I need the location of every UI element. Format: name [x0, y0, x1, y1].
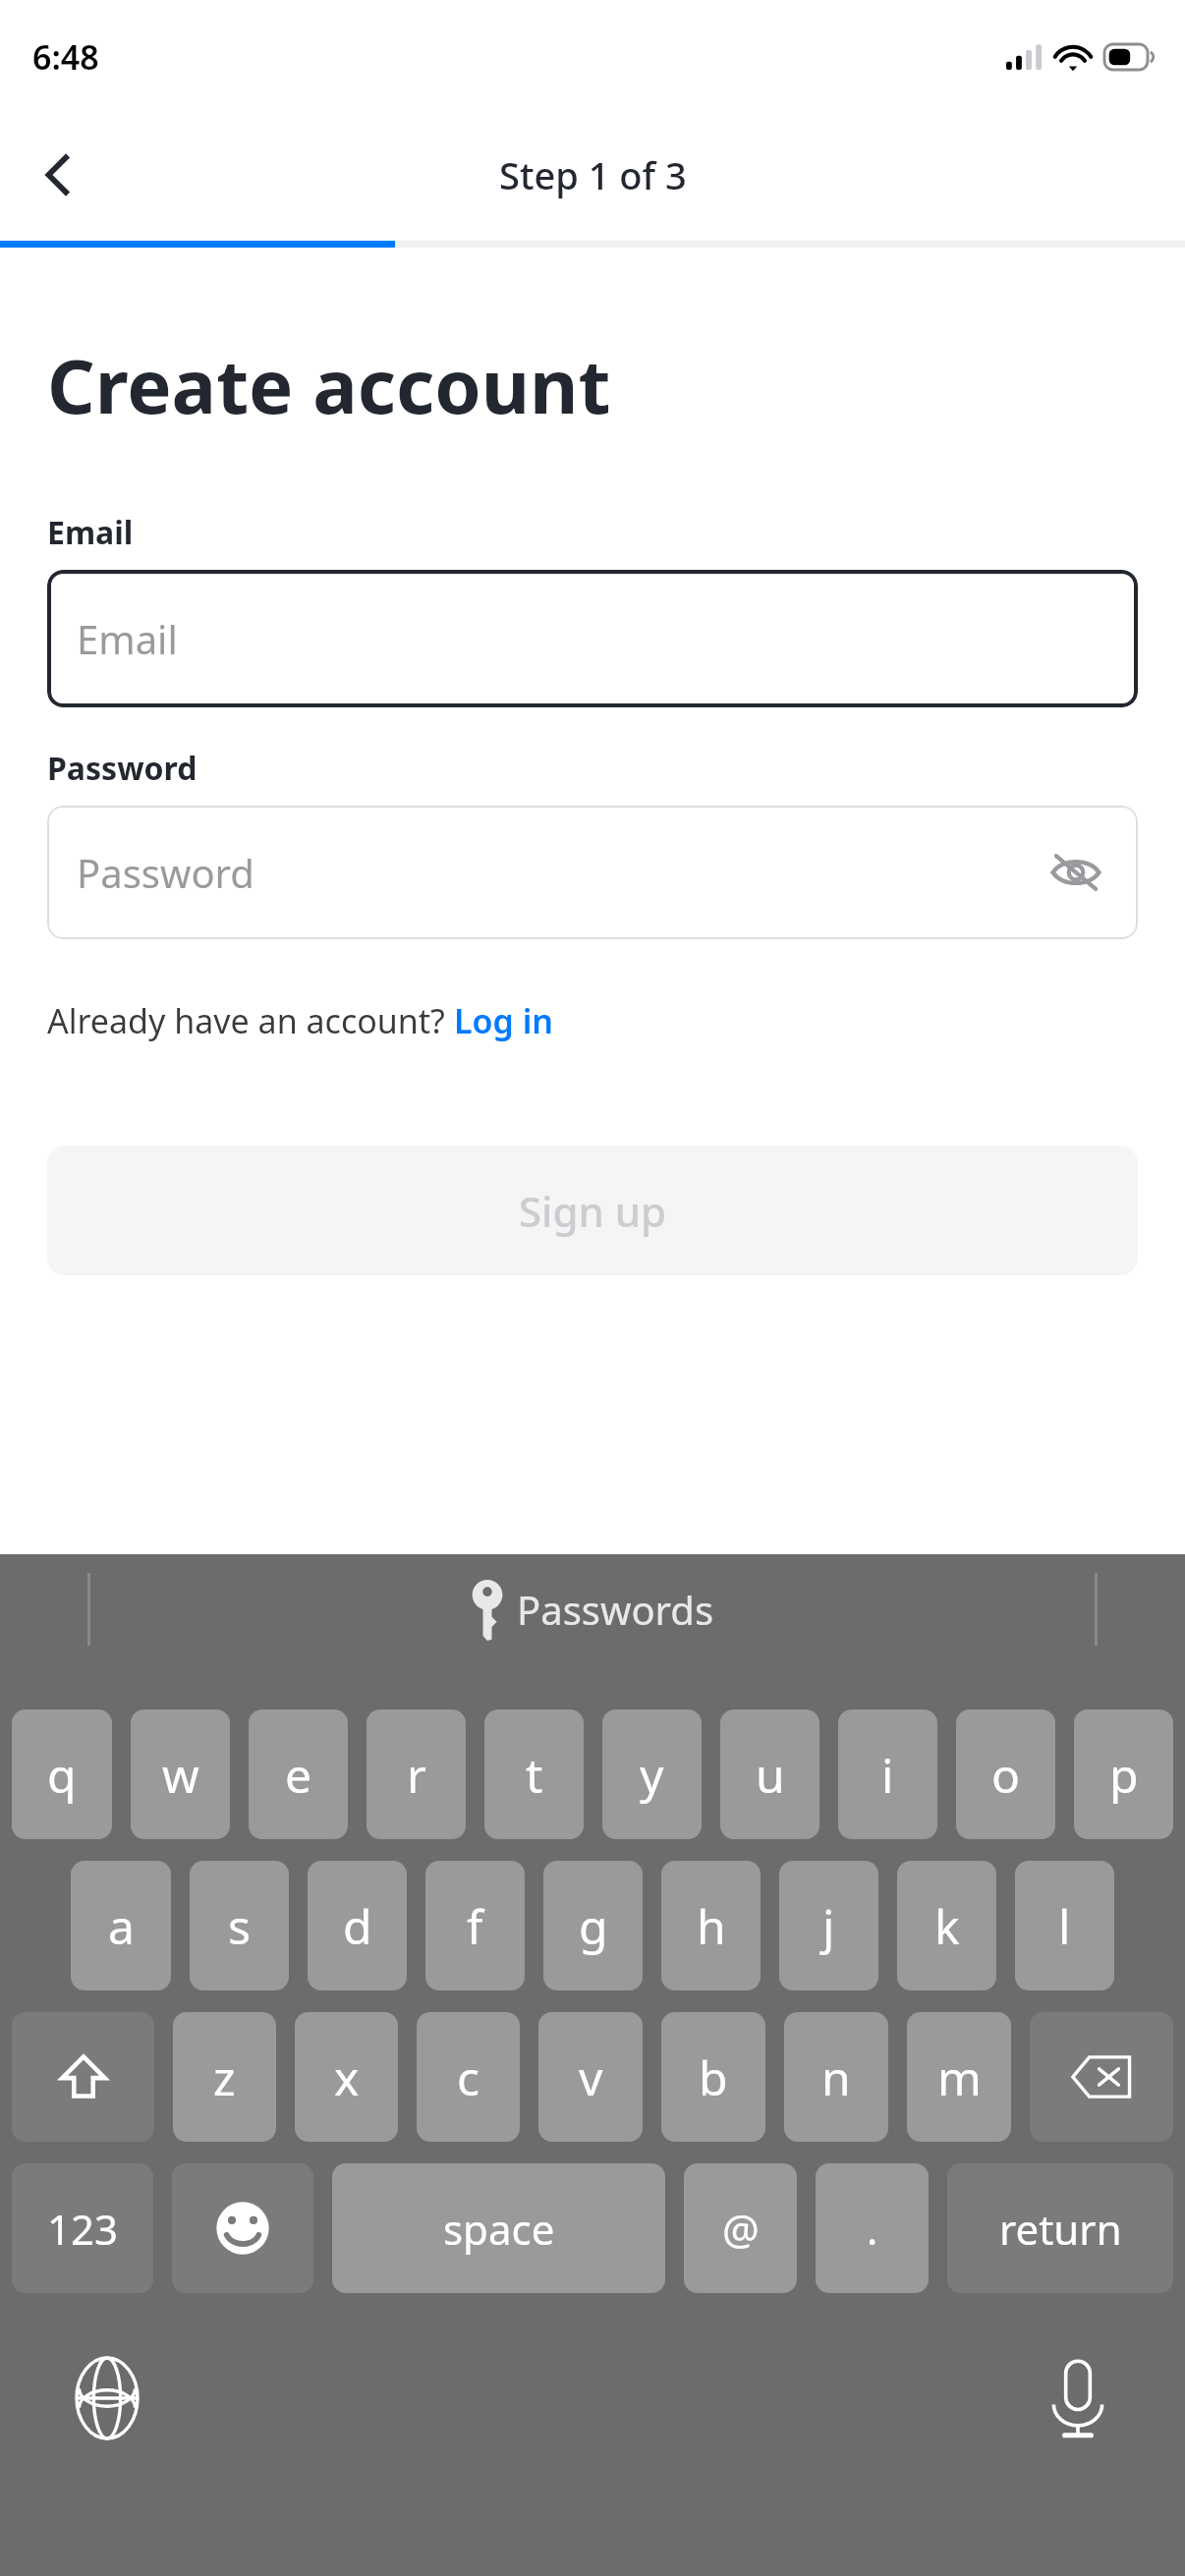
button[interactable]: Change keyboard language — [63, 2354, 151, 2442]
staticText: space — [443, 2201, 555, 2257]
button[interactable]: 123 — [12, 2163, 153, 2293]
button[interactable]: d — [308, 1861, 407, 1990]
button[interactable]: h — [661, 1861, 761, 1990]
button[interactable]: b — [661, 2012, 765, 2142]
staticText: e — [285, 1743, 312, 1807]
button[interactable]: Shift — [12, 2012, 154, 2142]
button[interactable]: v — [538, 2012, 643, 2142]
staticText: h — [697, 1894, 726, 1958]
staticText: a — [108, 1894, 135, 1958]
staticText: Email — [47, 511, 134, 554]
button[interactable]: c — [417, 2012, 520, 2142]
staticText: o — [991, 1743, 1021, 1807]
staticText: f — [467, 1894, 483, 1958]
staticText: Password — [77, 846, 254, 899]
button[interactable]: u — [720, 1709, 819, 1839]
button[interactable]: q — [12, 1709, 112, 1839]
staticText: z — [213, 2045, 236, 2109]
button[interactable]: space — [332, 2163, 665, 2293]
button[interactable]: x — [295, 2012, 398, 2142]
staticText: Create account — [47, 334, 611, 436]
staticText: Log in — [454, 998, 553, 1043]
button[interactable]: g — [543, 1861, 643, 1990]
staticText: q — [47, 1743, 77, 1807]
button[interactable]: Sign up — [47, 1146, 1138, 1275]
button[interactable]: Password — [47, 806, 1138, 939]
staticText: Step 1 of 3 — [499, 149, 687, 200]
staticText: Sign up — [519, 1183, 667, 1239]
staticText: k — [934, 1894, 960, 1958]
button[interactable]: Back — [10, 126, 108, 224]
button[interactable]: s — [190, 1861, 289, 1990]
staticText: l — [1058, 1894, 1071, 1958]
staticText: s — [228, 1894, 251, 1958]
staticText: y — [640, 1743, 664, 1807]
staticText: t — [526, 1743, 543, 1807]
staticText: p — [1109, 1743, 1139, 1807]
staticText: r — [407, 1743, 426, 1807]
button[interactable]: m — [907, 2012, 1011, 2142]
button[interactable]: Emoji — [172, 2163, 313, 2293]
staticText: @ — [722, 2201, 760, 2257]
staticText: Passwords — [517, 1583, 714, 1636]
button[interactable]: return — [947, 2163, 1173, 2293]
button[interactable]: j — [779, 1861, 878, 1990]
button[interactable]: l — [1015, 1861, 1114, 1990]
button[interactable]: n — [784, 2012, 888, 2142]
button[interactable]: k — [897, 1861, 996, 1990]
button[interactable]: Show password — [1040, 836, 1112, 909]
staticText: c — [457, 2045, 480, 2109]
button[interactable]: Backspace — [1030, 2012, 1173, 2142]
button[interactable]: w — [131, 1709, 230, 1839]
staticText: n — [821, 2045, 851, 2109]
staticText: j — [822, 1894, 835, 1958]
button[interactable]: y — [602, 1709, 702, 1839]
staticText: u — [756, 1743, 785, 1807]
button[interactable]: o — [956, 1709, 1055, 1839]
button[interactable]: @ — [684, 2163, 797, 2293]
button[interactable]: f — [425, 1861, 525, 1990]
staticText: b — [699, 2045, 728, 2109]
button[interactable]: p — [1074, 1709, 1173, 1839]
staticText: Already have an account? — [47, 998, 454, 1043]
button[interactable]: z — [173, 2012, 276, 2142]
staticText: v — [579, 2045, 603, 2109]
staticText: m — [937, 2045, 982, 2109]
button[interactable]: r — [367, 1709, 466, 1839]
staticText: 6:48 — [32, 34, 99, 80]
staticText: 123 — [47, 2201, 119, 2257]
button[interactable]: a — [71, 1861, 171, 1990]
staticText: . — [867, 2201, 878, 2257]
button[interactable]: . — [816, 2163, 929, 2293]
button[interactable]: e — [249, 1709, 348, 1839]
staticText: i — [881, 1743, 894, 1807]
button[interactable]: Voice input — [1034, 2354, 1122, 2442]
button[interactable]: t — [484, 1709, 584, 1839]
staticText: w — [162, 1743, 199, 1807]
staticText: Email — [77, 612, 178, 665]
button[interactable]: i — [838, 1709, 937, 1839]
staticText: x — [334, 2045, 360, 2109]
button[interactable]: Passwords — [472, 1578, 714, 1641]
staticText: Password — [47, 747, 197, 790]
staticText: return — [999, 2201, 1122, 2257]
staticText: g — [579, 1894, 608, 1958]
button[interactable]: Email — [47, 570, 1138, 707]
button[interactable]: Log in — [454, 998, 553, 1043]
staticText: d — [343, 1894, 372, 1958]
